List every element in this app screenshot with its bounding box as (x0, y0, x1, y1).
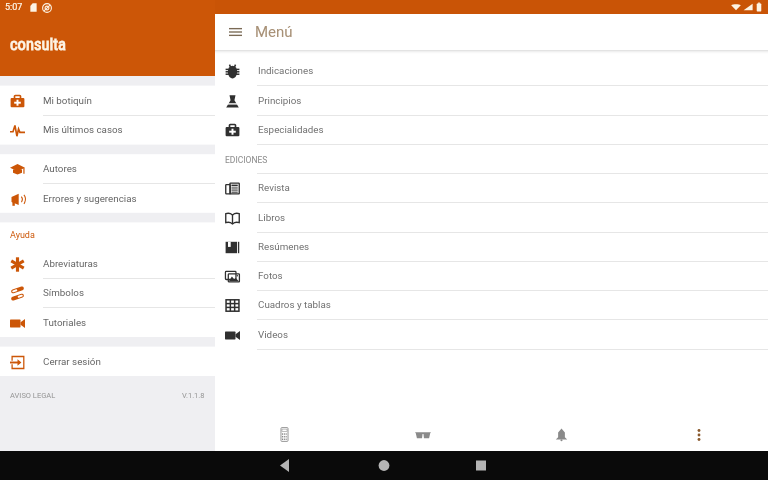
staticText: Libros (258, 212, 286, 223)
staticText: Videos (258, 329, 288, 340)
button[interactable]: Mi botiquín (0, 86, 215, 116)
staticText: Fotos (258, 270, 283, 281)
button[interactable]: Revista (215, 174, 768, 203)
button[interactable]: Glasses (354, 418, 492, 451)
staticText: Mi botiquín (43, 95, 92, 106)
staticText: Ayuda (10, 230, 35, 241)
staticText: Mis últimos casos (43, 124, 123, 135)
staticText: EDICIONES (225, 155, 268, 165)
button[interactable]: Errores y sugerencias (0, 184, 215, 214)
staticText: Principios (258, 95, 302, 106)
staticText: Indicaciones (258, 65, 314, 76)
button[interactable]: Libros (215, 204, 768, 233)
button[interactable]: Abreviaturas (0, 249, 215, 279)
button[interactable]: Videos (215, 321, 768, 350)
button[interactable]: Resúmenes (215, 233, 768, 262)
staticText: Símbolos (43, 287, 84, 298)
button[interactable]: Fotos (215, 262, 768, 291)
button[interactable]: Calculator (215, 418, 354, 451)
button[interactable]: Principios (215, 87, 768, 116)
staticText: Resúmenes (258, 241, 310, 252)
staticText: Errores y sugerencias (43, 193, 137, 204)
button[interactable]: Open navigation menu (215, 14, 255, 50)
staticText: Cerrar sesión (43, 356, 101, 367)
staticText: Abreviaturas (43, 258, 98, 269)
button[interactable]: Símbolos (0, 278, 215, 308)
staticText: V.1.1.8 (182, 391, 205, 400)
staticText: Cuadros y tablas (258, 299, 331, 310)
staticText: AVISO LEGAL (10, 391, 56, 400)
button[interactable]: Indicaciones (215, 57, 768, 86)
staticText: 5:07 (5, 2, 23, 13)
button[interactable]: Especialidades (215, 116, 768, 145)
button[interactable]: Mis últimos casos (0, 115, 215, 145)
staticText: Tutoriales (43, 317, 87, 328)
button[interactable]: Tutoriales (0, 308, 215, 338)
staticText: Especialidades (258, 124, 324, 135)
staticText: Autores (43, 163, 77, 174)
button[interactable]: Cuadros y tablas (215, 291, 768, 320)
staticText: Menú (255, 23, 293, 41)
staticText: Revista (258, 182, 290, 193)
button[interactable]: Notifications (492, 418, 630, 451)
button[interactable]: Autores (0, 154, 215, 184)
button[interactable]: More options (630, 418, 768, 451)
button[interactable]: Cerrar sesión (0, 347, 215, 377)
staticText: consulta (10, 35, 66, 54)
